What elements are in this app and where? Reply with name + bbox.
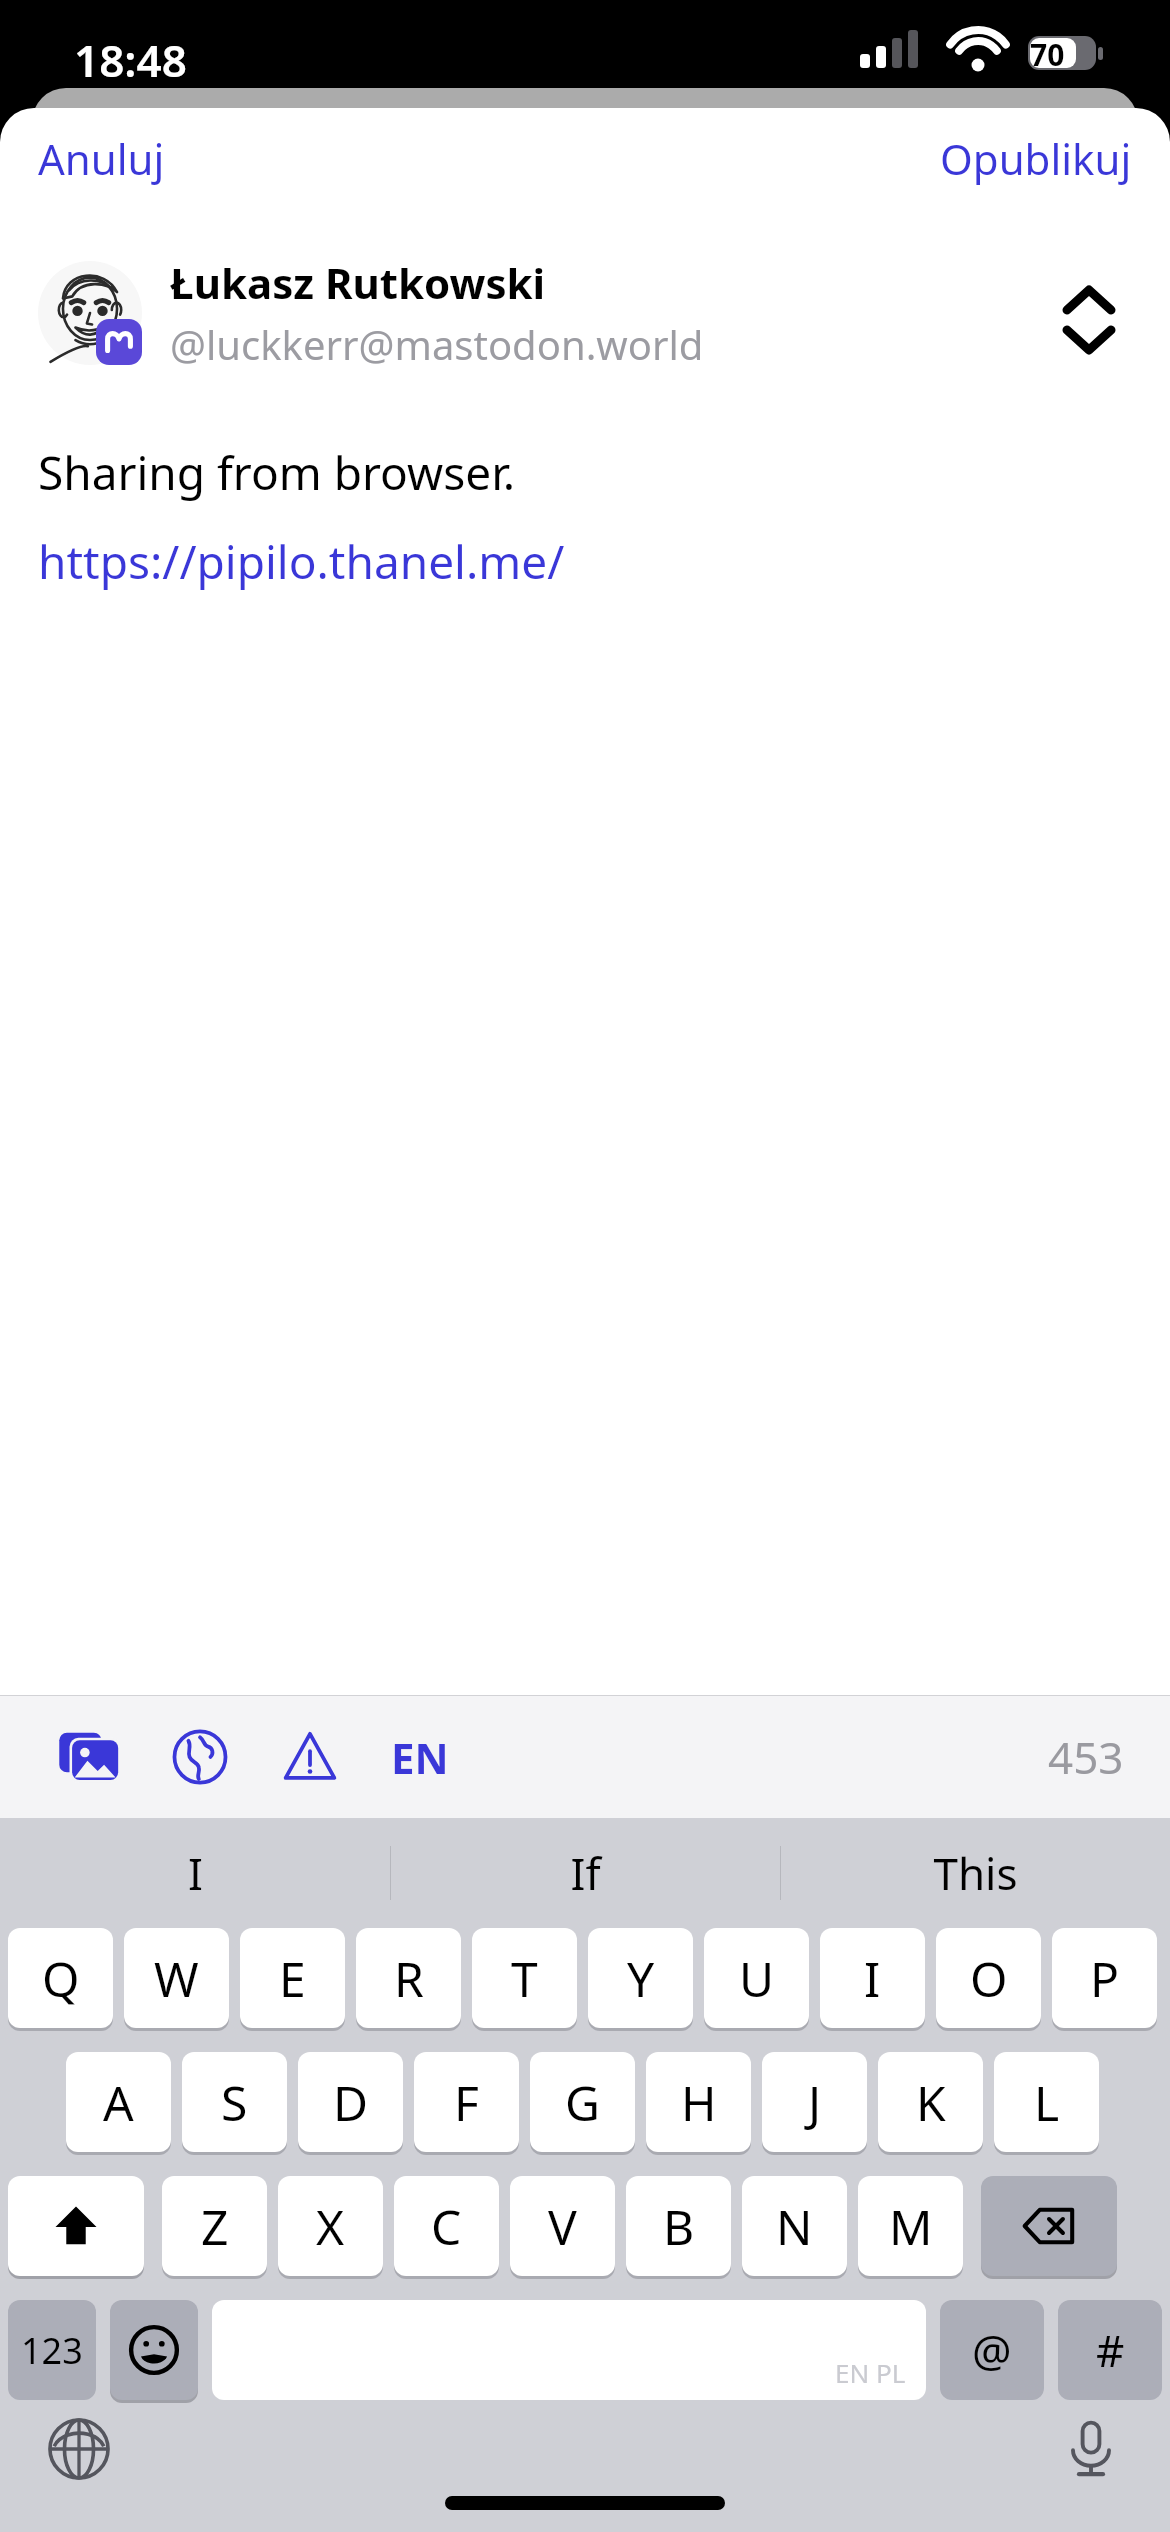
button[interactable]: Switch account bbox=[1046, 270, 1132, 356]
button[interactable]: 123 bbox=[8, 2300, 96, 2400]
button[interactable]: V bbox=[510, 2176, 615, 2276]
staticText: A bbox=[103, 2070, 134, 2135]
staticText: @ bbox=[972, 2320, 1012, 2380]
button[interactable]: Opublikuj bbox=[922, 122, 1150, 195]
button[interactable]: @ bbox=[940, 2300, 1044, 2400]
button[interactable]: N bbox=[742, 2176, 847, 2276]
button[interactable]: X bbox=[278, 2176, 383, 2276]
staticText: Z bbox=[201, 2194, 229, 2259]
button[interactable]: H bbox=[646, 2052, 751, 2152]
button[interactable]: EN bbox=[378, 1715, 462, 1799]
staticText: S bbox=[221, 2070, 248, 2135]
staticText: U bbox=[739, 1946, 775, 2011]
button[interactable]: K bbox=[878, 2052, 983, 2152]
staticText: Opublikuj bbox=[940, 130, 1132, 187]
staticText: W bbox=[154, 1946, 199, 2011]
button[interactable]: Content warning bbox=[268, 1715, 352, 1799]
staticText: C bbox=[431, 2194, 462, 2259]
staticText: 453 bbox=[1048, 1727, 1124, 1787]
staticText: O bbox=[970, 1946, 1008, 2011]
button[interactable]: Q bbox=[8, 1928, 113, 2028]
button[interactable]: Space bbox=[212, 2300, 926, 2400]
staticText: B bbox=[663, 2194, 695, 2259]
button[interactable]: M bbox=[858, 2176, 963, 2276]
staticText: F bbox=[454, 2070, 479, 2135]
button[interactable]: Shift bbox=[8, 2176, 144, 2276]
button[interactable]: P bbox=[1052, 1928, 1157, 2028]
button[interactable]: D bbox=[298, 2052, 403, 2152]
button[interactable]: E bbox=[240, 1928, 345, 2028]
staticText: I bbox=[864, 1946, 881, 2011]
button[interactable]: U bbox=[704, 1928, 809, 2028]
staticText: 18:48 bbox=[74, 30, 187, 90]
staticText: If bbox=[570, 1843, 601, 1903]
staticText: R bbox=[394, 1946, 424, 2011]
button[interactable]: F bbox=[414, 2052, 519, 2152]
button[interactable]: G bbox=[530, 2052, 635, 2152]
staticText: Sharing from browser. bbox=[38, 441, 516, 504]
button[interactable]: A bbox=[66, 2052, 171, 2152]
button[interactable]: Change keyboard bbox=[34, 2404, 124, 2494]
button[interactable]: B bbox=[626, 2176, 731, 2276]
staticText: T bbox=[511, 1946, 538, 2011]
staticText: D bbox=[333, 2070, 369, 2135]
button[interactable]: Y bbox=[588, 1928, 693, 2028]
staticText: Q bbox=[42, 1946, 80, 2011]
staticText: H bbox=[681, 2070, 717, 2135]
staticText: EN bbox=[391, 1729, 449, 1786]
staticText: Anuluj bbox=[38, 130, 165, 187]
staticText: # bbox=[1096, 2320, 1125, 2380]
button[interactable]: I bbox=[820, 1928, 925, 2028]
button[interactable]: This bbox=[781, 1818, 1170, 1928]
button[interactable]: Add media bbox=[48, 1715, 132, 1799]
button[interactable]: Visibility bbox=[158, 1715, 242, 1799]
button[interactable]: S bbox=[182, 2052, 287, 2152]
button[interactable]: O bbox=[936, 1928, 1041, 2028]
button[interactable]: If bbox=[391, 1818, 780, 1928]
staticText: J bbox=[808, 2070, 822, 2135]
staticText: I bbox=[188, 1843, 203, 1903]
staticText: G bbox=[565, 2070, 600, 2135]
button[interactable]: I bbox=[0, 1818, 390, 1928]
button[interactable]: C bbox=[394, 2176, 499, 2276]
staticText: @luckkerr@mastodon.world bbox=[170, 317, 704, 371]
button[interactable]: L bbox=[994, 2052, 1099, 2152]
button[interactable]: https://pipilo.thanel.me/ bbox=[38, 530, 565, 593]
staticText: V bbox=[548, 2194, 577, 2259]
button[interactable]: # bbox=[1058, 2300, 1162, 2400]
staticText: K bbox=[916, 2070, 946, 2135]
staticText: E bbox=[279, 1946, 306, 2011]
button[interactable]: Backspace bbox=[981, 2176, 1117, 2276]
staticText: P bbox=[1090, 1946, 1120, 2011]
staticText: This bbox=[933, 1843, 1018, 1903]
button[interactable]: Emoji bbox=[110, 2300, 198, 2400]
staticText: 70 bbox=[1030, 34, 1065, 75]
staticText: N bbox=[776, 2194, 813, 2259]
staticText: Łukasz Rutkowski bbox=[170, 254, 546, 311]
staticText: 123 bbox=[21, 2326, 83, 2375]
staticText: M bbox=[889, 2194, 933, 2259]
button[interactable]: Dictate bbox=[1046, 2404, 1136, 2494]
staticText: EN PL bbox=[835, 2355, 906, 2390]
staticText: X bbox=[316, 2194, 345, 2259]
button[interactable]: Anuluj bbox=[20, 122, 183, 195]
button[interactable]: Z bbox=[162, 2176, 267, 2276]
button[interactable]: Łukasz Rutkowski bbox=[0, 254, 1170, 371]
staticText: L bbox=[1034, 2070, 1060, 2135]
button[interactable]: T bbox=[472, 1928, 577, 2028]
button[interactable]: W bbox=[124, 1928, 229, 2028]
button[interactable]: J bbox=[762, 2052, 867, 2152]
staticText: Y bbox=[627, 1946, 655, 2011]
button[interactable]: R bbox=[356, 1928, 461, 2028]
